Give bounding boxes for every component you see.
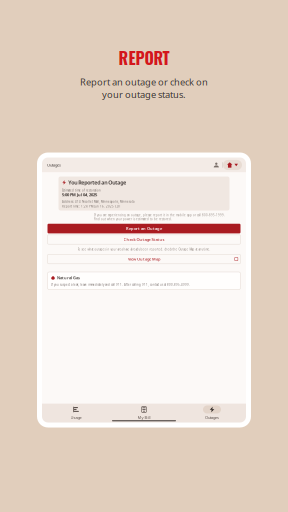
button[interactable]: Outages: [178, 405, 246, 420]
staticText: Outages: [47, 162, 61, 168]
button[interactable]: Report an Outage: [47, 224, 240, 233]
button[interactable]: Switch premise: [223, 160, 242, 170]
button[interactable]: Check Outage Status: [47, 235, 240, 244]
button[interactable]: View Outage Map: [47, 254, 240, 264]
staticText: My Bill: [137, 415, 150, 420]
staticText: your outage status.: [102, 88, 186, 100]
button[interactable]: My Bill: [110, 405, 178, 420]
staticText: REPORT: [118, 46, 169, 70]
staticText: Address: 414 Nicollet Mall, Minneapolis,…: [62, 200, 134, 203]
staticText: To see what outages in your area have al…: [77, 248, 210, 251]
staticText: 5:00 PM Jul 04, 2025: [62, 192, 97, 197]
staticText: Estimated time of restoration: [62, 189, 101, 192]
staticText: Natural Gas: [57, 275, 80, 280]
button[interactable]: Account: [210, 158, 222, 171]
staticText: Find out when your power is estimated to…: [94, 218, 172, 221]
staticText: Report Time: 1:24 PM Jun 16, 2025 CDT: [62, 205, 120, 208]
staticText: View Outage Map: [128, 256, 160, 262]
staticText: Outages: [205, 415, 219, 420]
button[interactable]: Usage: [42, 405, 110, 420]
staticText: Usage: [70, 415, 81, 420]
staticText: Check Outage Status: [123, 237, 164, 242]
staticText: You Reported an Outage: [68, 179, 126, 186]
staticText: If you suspect a leak, leave immediately…: [51, 283, 190, 286]
staticText: If you are experiencing an outage, pleas…: [94, 213, 225, 217]
staticText: Report an outage or check on: [80, 76, 208, 88]
staticText: Report an Outage: [126, 226, 162, 231]
